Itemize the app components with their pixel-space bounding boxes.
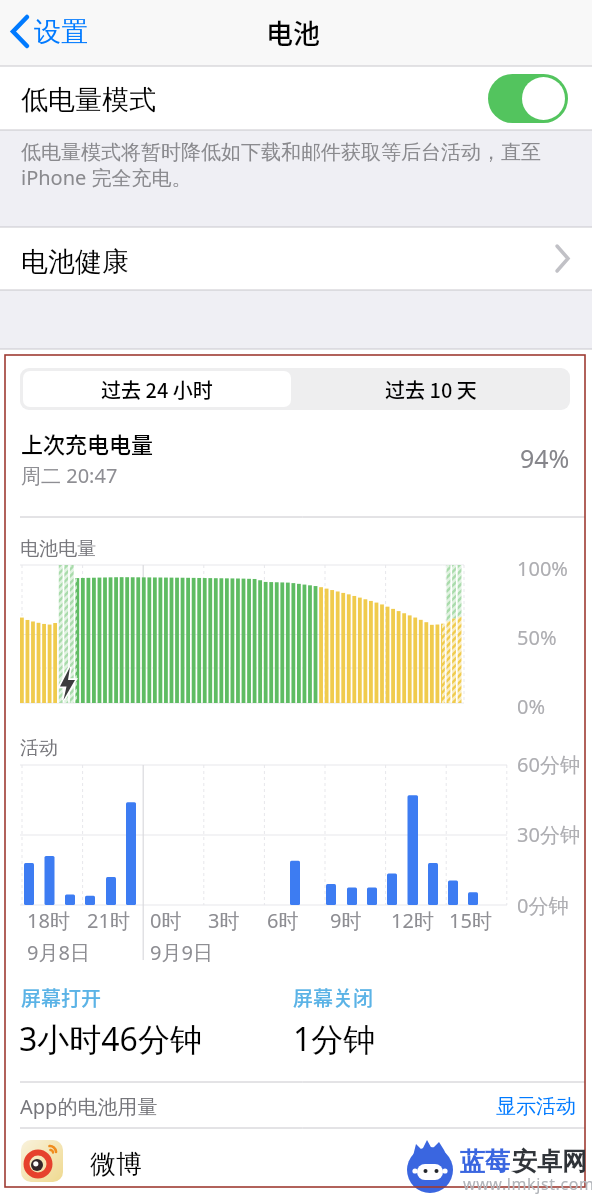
staticText: 18时 bbox=[27, 907, 70, 934]
staticText: 屏幕关闭 bbox=[293, 983, 373, 1012]
staticText: 100% bbox=[517, 555, 568, 582]
staticText: 0% bbox=[517, 693, 546, 720]
staticText: 0时 bbox=[150, 907, 182, 934]
staticText: 1分钟 bbox=[293, 1017, 376, 1061]
staticText: 6时 bbox=[267, 907, 299, 934]
staticText: 显示活动 bbox=[496, 1094, 576, 1119]
staticText: 3小时46分钟 bbox=[19, 1017, 202, 1061]
staticText: 蓝莓 bbox=[460, 1146, 510, 1177]
button[interactable] bbox=[488, 74, 568, 123]
button[interactable] bbox=[23, 371, 291, 407]
staticText: 低电量模式将暂时降低如下载和邮件获取等后台活动，直至 bbox=[21, 140, 541, 165]
staticText: 30分钟 bbox=[517, 821, 580, 848]
staticText: 9月8日 bbox=[27, 939, 90, 966]
staticText: 电池健康 bbox=[21, 245, 129, 279]
staticText: 周二 20:47 bbox=[21, 462, 118, 489]
staticText: 安卓网 bbox=[512, 1146, 587, 1177]
button[interactable] bbox=[295, 371, 567, 407]
button[interactable] bbox=[0, 66, 592, 130]
staticText: 电池电量 bbox=[20, 537, 96, 561]
button[interactable] bbox=[6, 8, 116, 60]
staticText: 过去 10 天 bbox=[385, 375, 477, 404]
staticText: 电池 bbox=[266, 13, 320, 52]
staticText: 12时 bbox=[391, 907, 434, 934]
button[interactable] bbox=[0, 1128, 592, 1194]
staticText: 15时 bbox=[449, 907, 492, 934]
staticText: 活动 bbox=[20, 736, 58, 760]
staticText: 3时 bbox=[208, 907, 240, 934]
staticText: 9时 bbox=[330, 907, 362, 934]
staticText: 屏幕打开 bbox=[21, 983, 101, 1012]
button[interactable]: 显示活动 bbox=[430, 1093, 576, 1119]
staticText: 过去 24 小时 bbox=[101, 375, 213, 404]
staticText: 50% bbox=[517, 624, 557, 651]
button[interactable] bbox=[0, 227, 592, 290]
staticText: 低电量模式 bbox=[21, 83, 156, 117]
staticText: 94% bbox=[520, 441, 570, 471]
staticText: 上次充电电量 bbox=[21, 427, 154, 459]
staticText: 微博 bbox=[90, 1148, 142, 1181]
staticText: App的电池用量 bbox=[20, 1093, 158, 1120]
staticText: 21时 bbox=[87, 907, 130, 934]
staticText: 设置 bbox=[34, 15, 88, 49]
staticText: 0分钟 bbox=[517, 892, 569, 919]
staticText: www.lmkjst.com bbox=[463, 1173, 592, 1194]
staticText: iPhone 完全充电。 bbox=[21, 164, 192, 191]
staticText: 60分钟 bbox=[517, 751, 580, 778]
staticText: 9月9日 bbox=[150, 939, 213, 966]
